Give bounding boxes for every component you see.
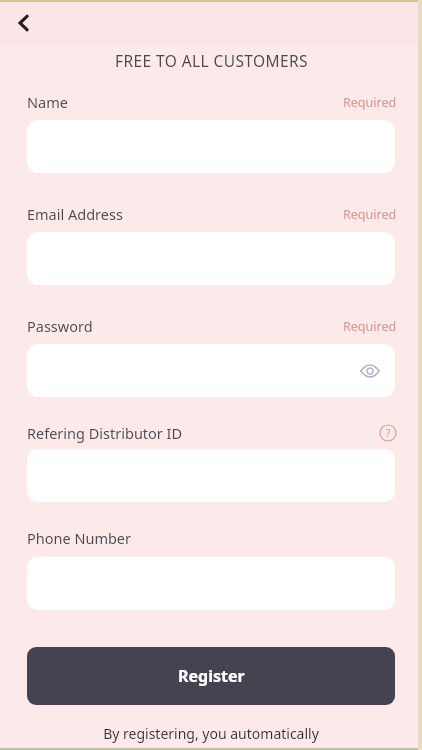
staticText: Required bbox=[343, 206, 397, 223]
staticText: Refering Distributor ID bbox=[27, 423, 183, 443]
staticText: FREE TO ALL CUSTOMERS bbox=[115, 50, 308, 71]
button[interactable]: Show password bbox=[27, 344, 395, 397]
staticText: By registering, you automatically bbox=[103, 724, 319, 743]
button[interactable]: Help about Referring Distributor ID bbox=[379, 424, 397, 442]
staticText: Email Address bbox=[27, 204, 123, 224]
staticText: Required bbox=[343, 94, 397, 111]
button[interactable]: Register bbox=[27, 647, 395, 705]
staticText: Password bbox=[27, 316, 93, 336]
staticText: Name bbox=[27, 92, 68, 112]
button[interactable]: Show password bbox=[357, 358, 383, 384]
staticText: Required bbox=[343, 318, 397, 335]
staticText: ? bbox=[386, 426, 391, 440]
staticText: Phone Number bbox=[27, 528, 132, 548]
button[interactable]: Back bbox=[4, 3, 44, 43]
staticText: Register bbox=[178, 665, 245, 687]
